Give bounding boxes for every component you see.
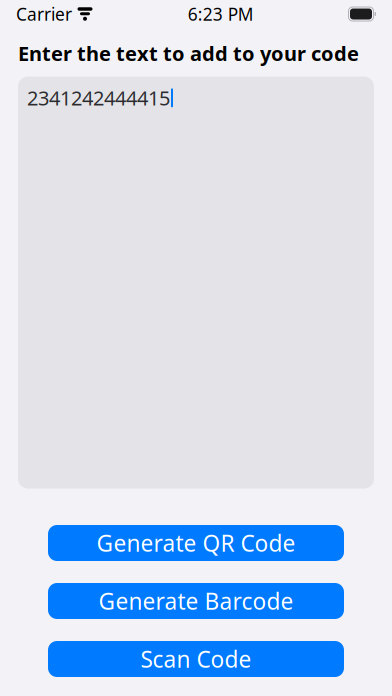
staticText: Generate QR Code	[96, 528, 295, 558]
staticText: 2341242444415	[27, 85, 170, 111]
staticText: Carrier	[16, 2, 72, 25]
staticText: 6:23 PM	[188, 2, 254, 25]
button[interactable]: Scan Code	[48, 641, 344, 677]
staticText: Generate Barcode	[98, 586, 293, 616]
button[interactable]: Generate QR Code	[48, 525, 344, 561]
button[interactable]: Generate Barcode	[48, 583, 344, 619]
staticText: Enter the text to add to your code	[18, 40, 359, 67]
staticText: Scan Code	[140, 644, 251, 674]
